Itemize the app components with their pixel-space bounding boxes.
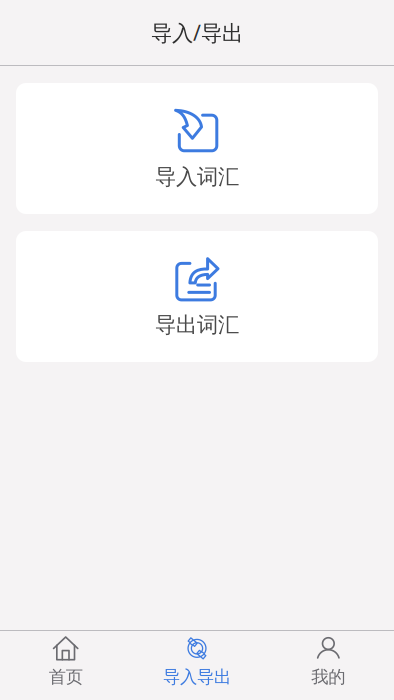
button[interactable]: 导出词汇 <box>16 231 378 362</box>
button[interactable]: 首页 <box>0 631 131 700</box>
staticText: 导入词汇 <box>155 164 239 190</box>
staticText: 导入/导出 <box>151 18 243 47</box>
staticText: 导出词汇 <box>155 312 239 338</box>
staticText: 首页 <box>49 666 83 688</box>
staticText: 导入导出 <box>163 666 231 688</box>
button[interactable]: 导入导出 <box>131 631 263 700</box>
button[interactable]: 导入词汇 <box>16 83 378 214</box>
button[interactable]: 我的 <box>263 631 394 700</box>
staticText: 我的 <box>311 666 345 688</box>
